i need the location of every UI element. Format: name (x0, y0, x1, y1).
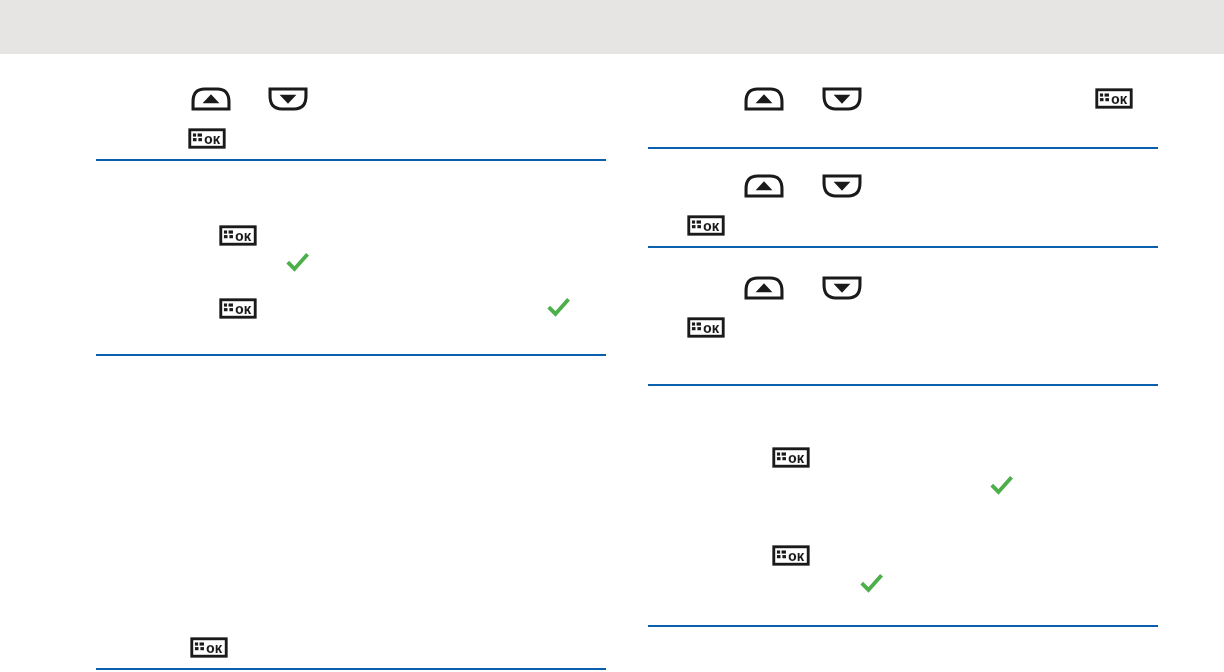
button[interactable]: Menu OK button (772, 447, 810, 468)
staticText: OK (204, 132, 221, 147)
button[interactable]: Menu OK button (1095, 88, 1133, 109)
button[interactable]: Scroll up (744, 276, 784, 300)
staticText: OK (1111, 92, 1128, 107)
button[interactable]: Menu OK button (219, 298, 257, 319)
staticText: OK (788, 451, 805, 466)
button[interactable]: Scroll up (744, 87, 784, 111)
button[interactable]: Menu OK button (219, 225, 257, 246)
button[interactable]: Menu OK button (190, 637, 228, 658)
button[interactable]: Scroll down (268, 87, 308, 111)
staticText: OK (788, 549, 805, 564)
button[interactable]: Scroll up (744, 174, 784, 198)
staticText: OK (235, 229, 252, 244)
staticText: OK (206, 641, 223, 656)
staticText: OK (703, 219, 720, 234)
button[interactable]: Menu OK button (772, 545, 810, 566)
button[interactable]: Scroll down (822, 87, 862, 111)
staticText: OK (235, 302, 252, 317)
button[interactable]: Scroll down (822, 174, 862, 198)
staticText: OK (703, 321, 720, 336)
button[interactable]: Menu OK button (687, 215, 725, 236)
button[interactable]: Scroll down (822, 276, 862, 300)
button[interactable]: Menu OK button (687, 317, 725, 338)
button[interactable]: Scroll up (191, 87, 231, 111)
button[interactable]: Menu OK button (188, 128, 226, 149)
